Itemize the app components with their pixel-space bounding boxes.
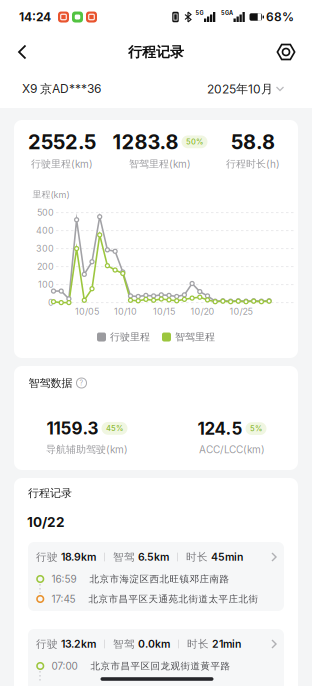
staticText: 124.5 — [197, 419, 242, 439]
staticText: 时长 — [186, 551, 211, 563]
staticText: ? — [79, 379, 83, 387]
staticText: 300 — [36, 243, 54, 254]
staticText: 10/05 — [75, 306, 99, 317]
staticText: 100 — [38, 279, 54, 290]
button[interactable]: 行驶 — [28, 629, 284, 686]
staticText: X9 京AD***36 — [22, 82, 101, 96]
staticText: 北京市海淀区西北旺镇邓庄南路 — [89, 573, 229, 585]
staticText: 0.0km — [138, 638, 170, 650]
staticText: 北京市昌平区回龙观街道黄平路 — [90, 660, 230, 672]
staticText: 10/25 — [229, 306, 252, 317]
staticText: 6.5km — [138, 551, 169, 563]
staticText: 16:59 — [51, 573, 76, 585]
staticText: 北京市昌平区天通苑北街道太平庄北街 — [88, 593, 258, 605]
button[interactable]: 2025年10月 — [207, 82, 284, 96]
staticText: 行程记录 — [128, 43, 184, 61]
staticText: 400 — [36, 225, 54, 236]
staticText: 45% — [106, 424, 123, 433]
staticText: 5G — [195, 10, 203, 16]
button[interactable]: Settings — [276, 34, 312, 70]
staticText: 行程记录 — [28, 486, 72, 500]
button[interactable]: Back — [0, 36, 27, 67]
staticText: 智驾 — [113, 638, 138, 650]
staticText: 2552.5 — [28, 130, 96, 154]
staticText: 智驾数据 — [28, 376, 72, 390]
staticText: 智驾 — [113, 551, 138, 563]
staticText: ACC/LCC(km) — [199, 444, 265, 455]
staticText: 1159.3 — [46, 418, 98, 438]
staticText: 10/22 — [27, 514, 65, 530]
staticText: 10/20 — [190, 306, 214, 317]
staticText: 10/10 — [114, 306, 137, 317]
staticText: 里程(km) — [32, 189, 69, 200]
staticText: 68% — [266, 10, 294, 24]
staticText: 行驶 — [36, 551, 61, 563]
staticText: 行驶里程(km) — [31, 158, 93, 170]
staticText: 行驶 — [36, 638, 61, 650]
staticText: 500 — [37, 207, 54, 218]
staticText: 导航辅助驾驶(km) — [46, 443, 128, 456]
staticText: 5% — [250, 424, 262, 433]
staticText: 18.9km — [61, 551, 96, 563]
button[interactable]: 智驾数据说明 — [76, 378, 86, 388]
staticText: 13.2km — [61, 638, 96, 650]
staticText: 2025年10月 — [207, 82, 273, 96]
staticText: 17:45 — [51, 593, 75, 605]
button[interactable]: 行驶 — [28, 542, 284, 611]
staticText: 58.8 — [231, 130, 275, 154]
staticText: 10/15 — [153, 306, 175, 317]
staticText: 5GA — [221, 10, 233, 16]
staticText: 时长 — [187, 638, 212, 650]
staticText: 50% — [186, 137, 203, 146]
staticText: 200 — [37, 261, 54, 272]
staticText: 智驾里程 — [175, 331, 215, 343]
staticText: 行程时长(h) — [226, 158, 280, 170]
staticText: 07:00 — [51, 660, 77, 672]
staticText: 21min — [212, 638, 241, 650]
staticText: 1283.8 — [112, 130, 178, 154]
staticText: 14:24 — [19, 10, 51, 24]
staticText: 45min — [211, 551, 243, 563]
staticText: 0 — [48, 297, 54, 308]
staticText: 智驾里程(km) — [129, 158, 191, 170]
staticText: 行驶里程 — [110, 331, 150, 343]
